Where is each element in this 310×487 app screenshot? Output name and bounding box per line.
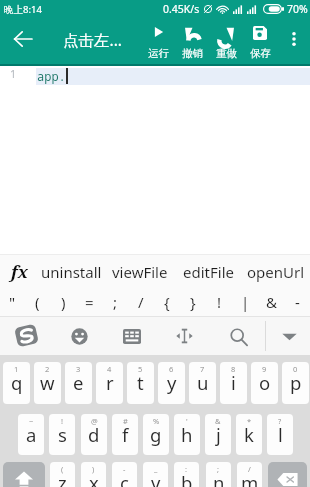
staticText: n — [213, 470, 225, 487]
button[interactable]: ? — [267, 414, 293, 455]
staticText: 0.45K/s — [163, 2, 200, 16]
staticText: _ — [154, 464, 158, 474]
button[interactable]: uninstall — [37, 255, 106, 288]
staticText: fx — [11, 260, 29, 283]
button[interactable]: : — [174, 462, 199, 487]
button[interactable]: fx — [0, 255, 37, 288]
button[interactable]: ! — [49, 414, 75, 455]
staticText: openUrl — [247, 262, 305, 282]
button[interactable]: 2 — [34, 362, 61, 404]
button[interactable]: ; — [102, 288, 128, 316]
button[interactable]: 运行 — [141, 18, 175, 62]
button[interactable]: ) — [81, 462, 106, 487]
staticText: @ — [91, 416, 98, 426]
button[interactable]: More options — [277, 18, 310, 62]
button[interactable]: 4 — [96, 362, 123, 404]
staticText: } — [190, 292, 196, 312]
button[interactable]: editFile — [174, 255, 242, 288]
button[interactable]: Shift — [3, 462, 45, 487]
button[interactable]: { — [154, 288, 180, 316]
staticText: app. — [37, 68, 66, 84]
staticText: 1 — [14, 364, 19, 374]
staticText: a — [26, 422, 37, 447]
staticText: ; — [113, 292, 118, 312]
button[interactable]: 撤销 — [175, 18, 209, 62]
button[interactable]: openUrl — [242, 255, 310, 288]
button[interactable]: @ — [81, 414, 107, 455]
button[interactable]: Backspace — [268, 462, 307, 487]
staticText: 0 — [293, 364, 298, 374]
button[interactable]: 保存 — [243, 18, 277, 62]
button[interactable]: % — [143, 414, 169, 455]
staticText: 重做 — [216, 47, 237, 60]
button[interactable]: ' — [174, 414, 200, 455]
button[interactable]: } — [180, 288, 206, 316]
staticText: p — [290, 370, 302, 395]
button[interactable]: 9 — [251, 362, 278, 404]
button[interactable]: 1 — [3, 362, 30, 404]
staticText: 7 — [200, 364, 205, 374]
button[interactable]: Hide keyboard — [266, 317, 310, 355]
button[interactable]: 5 — [127, 362, 154, 404]
button[interactable]: | — [232, 288, 258, 316]
button[interactable]: 3 — [65, 362, 92, 404]
staticText: d — [88, 422, 100, 447]
button[interactable]: & — [258, 288, 284, 316]
button[interactable]: * — [236, 414, 262, 455]
button[interactable]: 6 — [158, 362, 185, 404]
button[interactable]: 0 — [282, 362, 309, 404]
button[interactable]: ~ — [18, 414, 44, 455]
button[interactable]: " — [0, 288, 25, 316]
staticText: ! — [217, 292, 222, 312]
staticText: ! — [61, 416, 64, 426]
button[interactable]: Keyboard layout — [106, 317, 158, 355]
staticText: k — [244, 422, 254, 447]
staticText: l — [278, 422, 283, 447]
staticText: f — [122, 422, 129, 447]
staticText: / — [248, 464, 251, 474]
staticText: * — [247, 416, 252, 426]
button[interactable]: - — [284, 288, 310, 316]
button[interactable]: Emoji — [53, 317, 105, 355]
staticText: 保存 — [250, 47, 271, 60]
button[interactable]: ) — [50, 288, 76, 316]
button[interactable]: / — [237, 462, 262, 487]
staticText: 6 — [169, 364, 174, 374]
staticText: w — [40, 370, 55, 395]
button[interactable]: Search — [210, 317, 268, 355]
button[interactable]: ( — [25, 288, 50, 316]
staticText: ) — [61, 292, 66, 312]
staticText: 9 — [262, 364, 267, 374]
button[interactable]: Back — [0, 18, 45, 62]
staticText: m — [241, 470, 259, 487]
staticText: z — [58, 470, 67, 487]
button[interactable]: 7 — [189, 362, 216, 404]
staticText: 70% — [287, 2, 308, 16]
button[interactable]: _ — [143, 462, 168, 487]
button[interactable]: Move cursor — [158, 317, 210, 355]
button[interactable]: # — [112, 414, 138, 455]
staticText: 晚上8:14 — [4, 3, 42, 16]
staticText: c — [120, 470, 129, 487]
staticText: ) — [92, 464, 95, 474]
staticText: - — [295, 292, 300, 312]
button[interactable]: Sogou input — [0, 317, 52, 355]
staticText: % — [153, 416, 160, 426]
button[interactable]: ; — [206, 462, 231, 487]
button[interactable]: 重做 — [209, 18, 243, 62]
button[interactable]: & — [205, 414, 231, 455]
staticText: t — [137, 370, 144, 395]
button[interactable]: / — [128, 288, 154, 316]
staticText: j — [216, 422, 221, 447]
button[interactable]: ( — [50, 462, 75, 487]
button[interactable]: = — [76, 288, 102, 316]
button[interactable]: - — [112, 462, 137, 487]
staticText: editFile — [183, 262, 234, 282]
staticText: e — [73, 370, 84, 395]
button[interactable]: ! — [206, 288, 232, 316]
button[interactable]: 8 — [220, 362, 247, 404]
staticText: & — [266, 292, 277, 312]
staticText: 3 — [76, 364, 81, 374]
staticText: 1 — [10, 66, 17, 81]
button[interactable]: viewFile — [106, 255, 174, 288]
